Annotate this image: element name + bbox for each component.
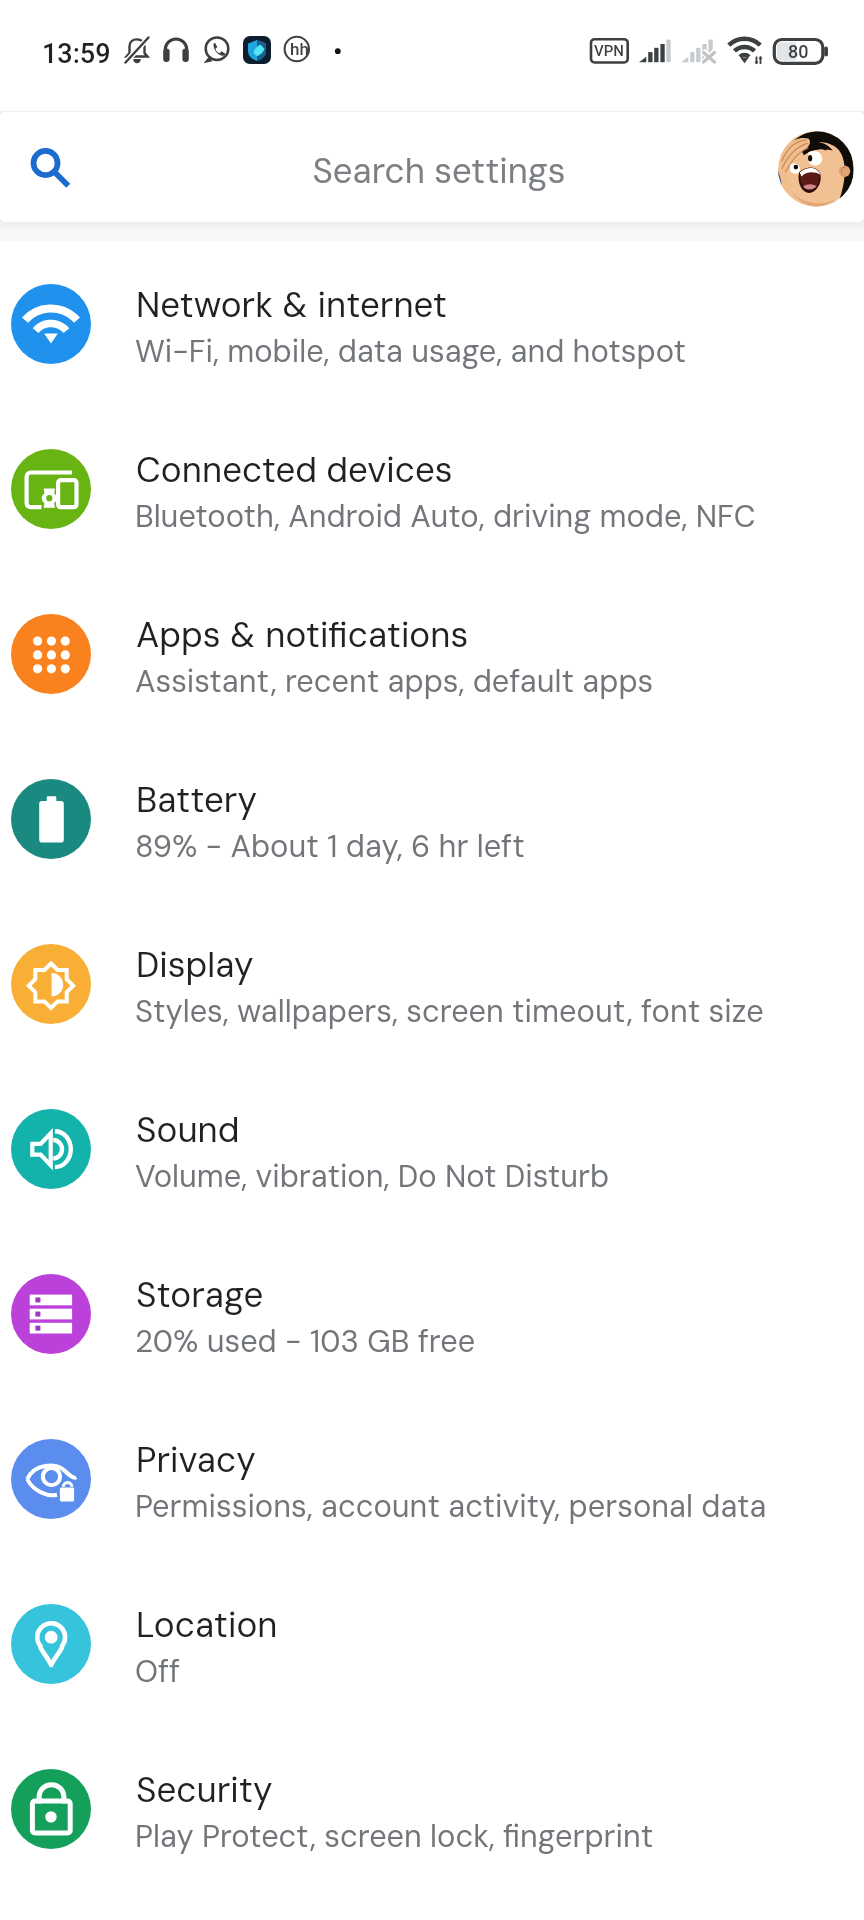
staticText: Security xyxy=(136,1767,273,1813)
staticText: Play Protect, screen lock, fingerprint xyxy=(135,1816,654,1856)
other: Search xyxy=(16,137,76,197)
staticText: Styles, wallpapers, screen timeout, font… xyxy=(135,991,764,1031)
staticText: Apps & notifications xyxy=(136,612,469,658)
button[interactable]: Display xyxy=(0,901,864,1066)
button[interactable]: Account xyxy=(778,131,854,207)
button[interactable]: Search xyxy=(0,112,864,222)
button[interactable]: Storage xyxy=(0,1231,864,1396)
button[interactable]: Connected devices xyxy=(0,406,864,571)
staticText: 20% used - 103 GB free xyxy=(135,1321,476,1361)
button[interactable]: Sound xyxy=(0,1066,864,1231)
button[interactable]: Privacy xyxy=(0,1396,864,1561)
staticText: Search settings xyxy=(7,148,864,193)
staticText: Battery xyxy=(136,777,257,823)
staticText: Wi-Fi, mobile, data usage, and hotspot xyxy=(135,331,686,371)
staticText: Connected devices xyxy=(136,447,453,493)
staticText: Sound xyxy=(136,1107,240,1153)
staticText: Location xyxy=(136,1602,278,1648)
button[interactable]: Location xyxy=(0,1561,864,1726)
staticText: Display xyxy=(136,942,254,988)
staticText: 80 xyxy=(788,41,809,62)
button[interactable]: Battery xyxy=(0,736,864,901)
staticText: 13:59 xyxy=(42,38,111,70)
button[interactable]: Network & internet xyxy=(0,241,864,406)
staticText: Off xyxy=(135,1651,181,1691)
staticText: 89% - About 1 day, 6 hr left xyxy=(135,826,525,866)
staticText: Permissions, account activity, personal … xyxy=(135,1486,767,1526)
staticText: Bluetooth, Android Auto, driving mode, N… xyxy=(135,496,756,536)
staticText: Storage xyxy=(136,1272,264,1318)
staticText: Volume, vibration, Do Not Disturb xyxy=(135,1156,610,1196)
staticText: Assistant, recent apps, default apps xyxy=(135,661,654,701)
staticText: Network & internet xyxy=(136,282,448,328)
staticText: hh xyxy=(290,39,309,59)
button[interactable]: Apps & notifications xyxy=(0,571,864,736)
button[interactable]: Security xyxy=(0,1726,864,1891)
staticText: VPN xyxy=(594,42,624,60)
staticText: Privacy xyxy=(136,1437,256,1483)
